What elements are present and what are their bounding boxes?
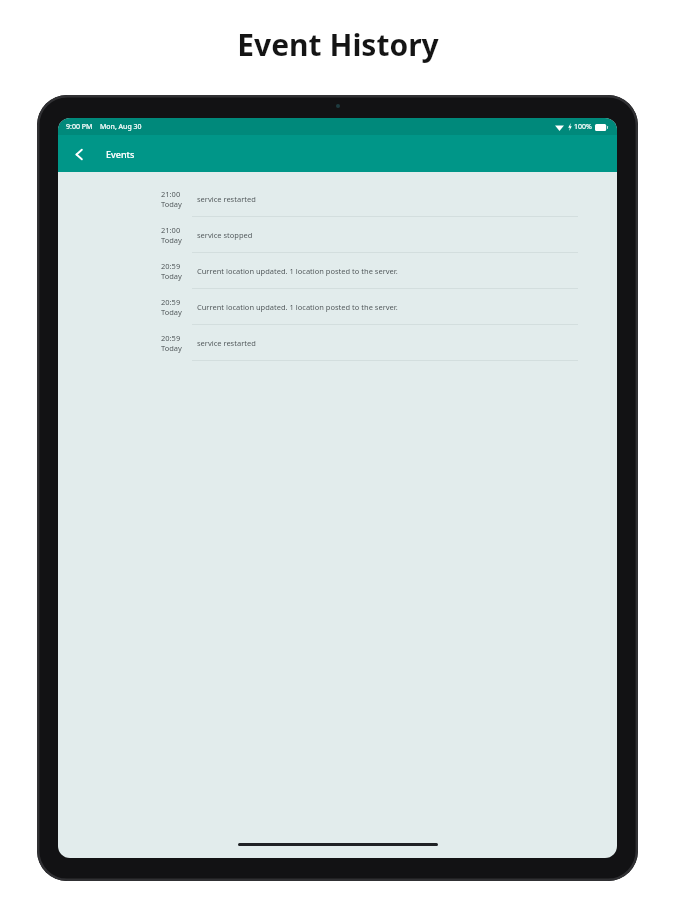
staticText: Current location updated. 1 location pos… <box>197 266 398 276</box>
button[interactable]: Back <box>63 138 95 170</box>
staticText: Today <box>161 199 182 209</box>
button[interactable]: 21:00 <box>58 181 617 216</box>
button[interactable]: 20:59 <box>58 289 617 324</box>
staticText: Today <box>161 235 182 245</box>
button[interactable]: 20:59 <box>58 325 617 360</box>
staticText: Today <box>161 307 182 317</box>
staticText: Mon, Aug 30 <box>100 122 142 132</box>
staticText: service restarted <box>197 194 256 204</box>
staticText: 20:59 <box>161 297 181 307</box>
staticText: 100% <box>574 122 592 132</box>
button[interactable]: 20:59 <box>58 253 617 288</box>
staticText: 20:59 <box>161 333 181 343</box>
staticText: 21:00 <box>161 189 181 199</box>
staticText: service restarted <box>197 338 256 348</box>
staticText: Today <box>161 271 182 281</box>
staticText: 20:59 <box>161 261 181 271</box>
staticText: 21:00 <box>161 225 181 235</box>
staticText: Current location updated. 1 location pos… <box>197 302 398 312</box>
staticText: 9:00 PM <box>66 122 93 132</box>
button[interactable]: 21:00 <box>58 217 617 252</box>
staticText: service stopped <box>197 230 253 240</box>
staticText: Today <box>161 343 182 353</box>
staticText: Events <box>106 148 135 160</box>
staticText: Event History <box>237 24 439 65</box>
